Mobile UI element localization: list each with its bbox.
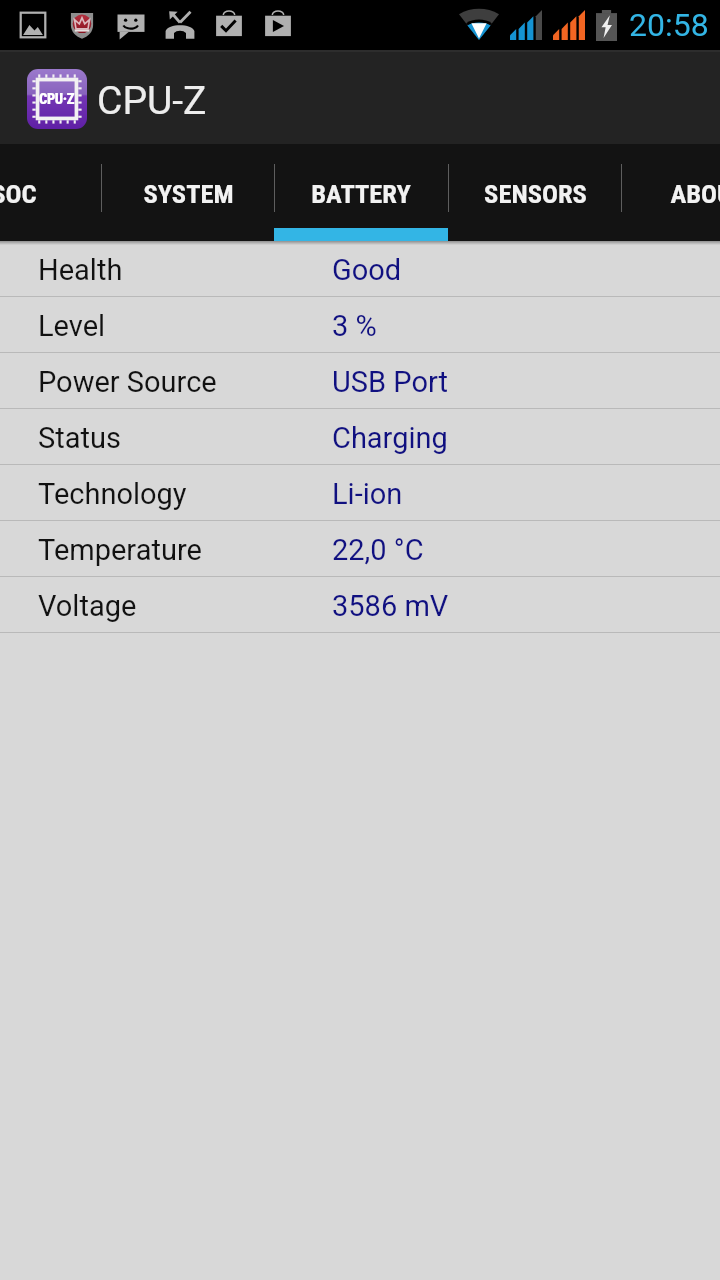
staticText: Charging	[332, 421, 448, 455]
staticText: ABOUT	[670, 178, 720, 209]
staticText: 3586 mV	[332, 589, 449, 623]
staticText: 20:58	[629, 6, 709, 44]
staticText: CPU-Z	[97, 78, 207, 124]
button[interactable]: SENSORS	[448, 144, 622, 241]
button[interactable]: SOC	[0, 144, 101, 241]
staticText: SYSTEM	[143, 178, 234, 209]
staticText: BATTERY	[311, 178, 411, 209]
button[interactable]: Temperature	[0, 521, 720, 577]
staticText: 22,0 °C	[332, 533, 424, 567]
staticText: SENSORS	[484, 178, 587, 209]
staticText: Voltage	[38, 589, 137, 623]
staticText: Temperature	[38, 533, 202, 567]
staticText: Technology	[38, 477, 187, 511]
staticText: Level	[38, 309, 106, 343]
staticText: Li-ion	[332, 477, 403, 511]
staticText: SOC	[0, 178, 37, 209]
staticText: CPU·Z	[39, 91, 75, 108]
button[interactable]: SYSTEM	[101, 144, 275, 241]
button[interactable]: Voltage	[0, 577, 720, 633]
staticText: Status	[38, 421, 121, 455]
staticText: USB Port	[332, 365, 448, 399]
button[interactable]: CPU-Z, home	[0, 50, 231, 144]
button[interactable]: Health	[0, 241, 720, 297]
button[interactable]: Power Source	[0, 353, 720, 409]
button[interactable]: Status	[0, 409, 720, 465]
button[interactable]: BATTERY	[274, 144, 448, 241]
staticText: Power Source	[38, 365, 217, 399]
staticText: 3 %	[332, 309, 377, 343]
button[interactable]: Level	[0, 297, 720, 353]
button[interactable]: Technology	[0, 465, 720, 521]
staticText: Health	[38, 253, 123, 287]
button[interactable]: ABOUT	[621, 144, 720, 241]
staticText: Good	[332, 253, 402, 287]
